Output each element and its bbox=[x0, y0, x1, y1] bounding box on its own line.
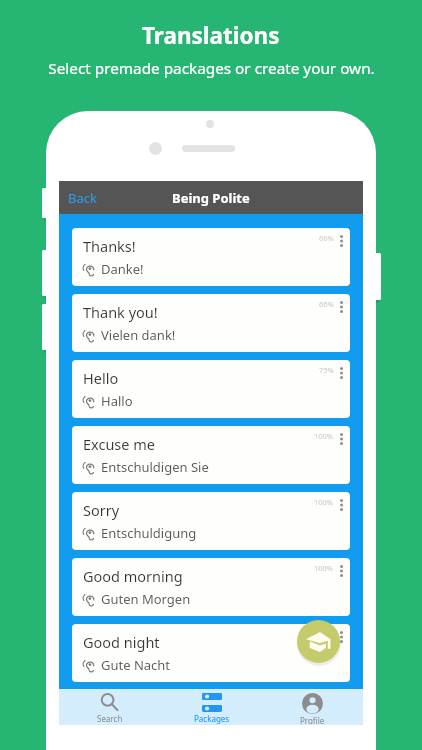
button[interactable]: Profile bbox=[262, 689, 363, 725]
button[interactable]: Excuse me bbox=[72, 426, 350, 484]
staticText: 100% bbox=[314, 497, 334, 507]
staticText: Sorry bbox=[83, 500, 120, 520]
staticText: Hello bbox=[83, 368, 119, 388]
staticText: 100% bbox=[314, 629, 334, 639]
button[interactable]: Thanks! bbox=[72, 228, 350, 286]
staticText: Thank you! bbox=[83, 302, 158, 322]
staticText: Guten Morgen bbox=[101, 590, 191, 608]
staticText: Search bbox=[97, 713, 123, 724]
staticText: 66% bbox=[319, 299, 334, 309]
button[interactable]: More options bbox=[340, 565, 343, 577]
button[interactable]: More options bbox=[340, 499, 343, 511]
staticText: Back bbox=[68, 189, 97, 207]
staticText: 66% bbox=[319, 233, 334, 243]
staticText: Entschuldigung bbox=[101, 524, 197, 542]
button[interactable]: More options bbox=[340, 301, 343, 313]
staticText: 100% bbox=[314, 563, 334, 573]
button[interactable]: Back bbox=[59, 183, 109, 213]
staticText: Gute Nacht bbox=[101, 656, 171, 674]
button[interactable]: More options bbox=[340, 631, 343, 643]
staticText: Translations bbox=[142, 20, 280, 51]
button[interactable]: Search bbox=[59, 689, 161, 725]
button[interactable]: Good morning bbox=[72, 558, 350, 616]
staticText: Vielen dank! bbox=[101, 326, 176, 344]
staticText: 100% bbox=[314, 431, 334, 441]
staticText: 75% bbox=[319, 365, 334, 375]
button[interactable]: Packages bbox=[161, 689, 262, 725]
staticText: Packages bbox=[194, 713, 230, 724]
button[interactable]: More options bbox=[340, 367, 343, 379]
button[interactable]: More options bbox=[340, 433, 343, 445]
staticText: Excuse me bbox=[83, 434, 155, 454]
staticText: Select premade packages or create your o… bbox=[48, 58, 375, 79]
staticText: Hallo bbox=[101, 392, 133, 410]
staticText: Entschuldigen Sie bbox=[101, 458, 209, 476]
staticText: Good morning bbox=[83, 566, 183, 586]
button[interactable]: Sorry bbox=[72, 492, 350, 550]
button[interactable]: Learn bbox=[297, 620, 340, 663]
staticText: Good night bbox=[83, 632, 160, 652]
button[interactable]: Good night bbox=[72, 624, 350, 682]
button[interactable]: More options bbox=[340, 235, 343, 247]
staticText: Thanks! bbox=[83, 236, 136, 256]
staticText: Danke! bbox=[101, 260, 144, 278]
staticText: Profile bbox=[300, 715, 325, 725]
button[interactable]: Thank you! bbox=[72, 294, 350, 352]
staticText: Being Polite bbox=[172, 189, 250, 207]
button[interactable]: Hello bbox=[72, 360, 350, 418]
